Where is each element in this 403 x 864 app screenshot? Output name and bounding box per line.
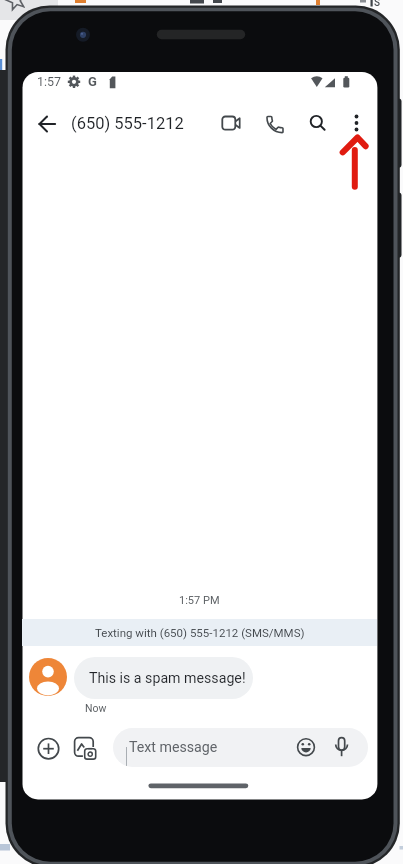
staticText: G: [88, 74, 97, 89]
staticText: Now: [85, 702, 107, 714]
staticText: S: [374, 0, 381, 9]
button[interactable]: [218, 109, 247, 138]
staticText: 1:57: [37, 74, 62, 89]
button[interactable]: [33, 110, 61, 138]
button[interactable]: [295, 736, 317, 758]
button[interactable]: [345, 109, 369, 138]
staticText: (650) 555-1212: [71, 114, 184, 133]
button[interactable]: [260, 109, 289, 138]
button[interactable]: [330, 734, 354, 760]
button[interactable]: [29, 658, 67, 696]
button[interactable]: This is a spam message!: [74, 657, 253, 699]
staticText: 1:57 PM: [179, 594, 220, 607]
button[interactable]: Text message: [113, 728, 368, 767]
button[interactable]: [303, 108, 332, 137]
staticText: Texting with (650) 555-1212 (SMS/MMS): [95, 626, 305, 639]
staticText: This is a spam message!: [89, 670, 246, 687]
staticText: Text message: [129, 739, 218, 756]
button[interactable]: [72, 735, 100, 763]
button[interactable]: [36, 736, 61, 761]
